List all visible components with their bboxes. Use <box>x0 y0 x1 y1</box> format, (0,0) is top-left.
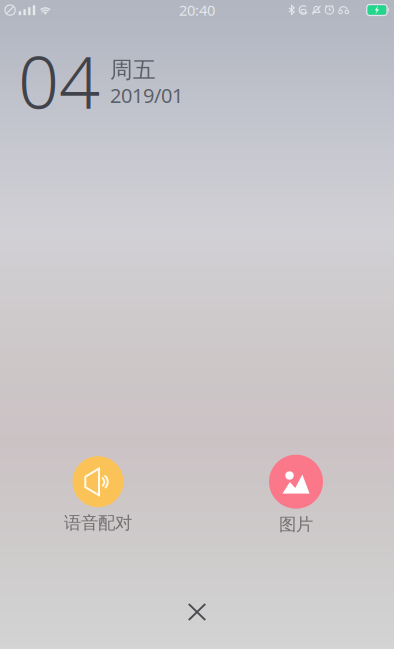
staticText: 2019/01 <box>110 82 183 108</box>
staticText: 语音配对 <box>64 512 132 533</box>
staticText: 04 <box>18 33 100 129</box>
staticText: 周五 <box>110 56 156 84</box>
button[interactable]: Close <box>170 592 224 632</box>
button[interactable]: 图片 <box>237 455 355 535</box>
staticText: 20:40 <box>179 0 215 20</box>
staticText: 图片 <box>279 514 313 535</box>
button[interactable]: 语音配对 <box>39 456 157 533</box>
